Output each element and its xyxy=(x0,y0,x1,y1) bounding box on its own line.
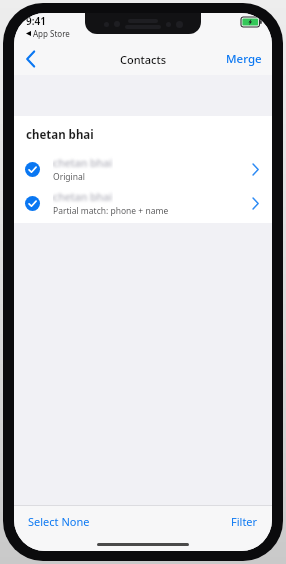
staticText: Original xyxy=(53,171,85,183)
staticText: chetan bhai xyxy=(53,156,113,170)
staticText: Select None xyxy=(28,514,90,529)
button[interactable]: chetan bhai xyxy=(14,186,272,220)
staticText: Filter xyxy=(231,514,258,529)
button[interactable]: Select None xyxy=(14,508,100,535)
staticText: Merge xyxy=(226,51,262,67)
button[interactable]: chetan bhai xyxy=(14,152,272,186)
staticText: chetan bhai xyxy=(53,190,113,204)
staticText: 9:41 xyxy=(26,14,46,28)
button[interactable]: Back xyxy=(14,43,48,75)
staticText: Partial match: phone + name xyxy=(53,205,169,217)
button[interactable]: Filter xyxy=(221,508,272,535)
button[interactable]: Merge xyxy=(216,45,272,73)
staticText: Contacts xyxy=(120,52,167,67)
staticText: App Store xyxy=(33,28,70,39)
staticText: chetan bhai xyxy=(26,127,94,143)
